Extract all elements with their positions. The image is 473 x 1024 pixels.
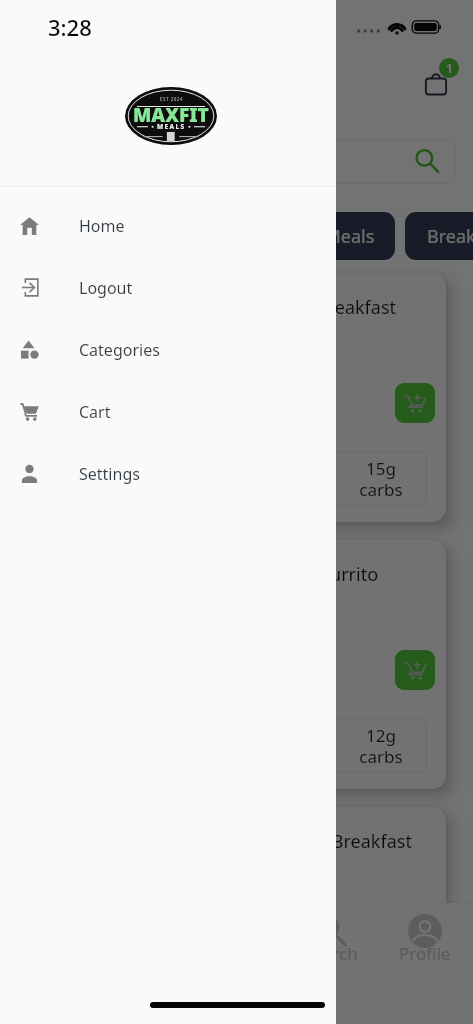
button[interactable]: Protein Breakfast (18, 273, 446, 522)
staticText: 420 kcal (59, 457, 91, 501)
staticText: Protein Breakfast (250, 295, 396, 320)
staticText: 15g carbs (359, 457, 403, 501)
button[interactable]: Logout (0, 258, 336, 320)
staticText: Chicken Burrito (247, 562, 379, 587)
staticText: 12g fat (264, 991, 294, 1024)
staticText: MAXFIT (133, 102, 209, 128)
staticText: Search (304, 942, 358, 965)
staticText: Breakfast (427, 224, 473, 249)
staticText: Settings (79, 463, 140, 485)
button[interactable]: Chicken Burrito (18, 540, 446, 789)
staticText: Home (79, 215, 125, 237)
button[interactable]: Categories (0, 320, 336, 382)
button[interactable]: Power Breakfast (18, 807, 446, 1024)
staticText: Cart (79, 401, 111, 423)
button[interactable]: High Protein (18, 212, 257, 260)
button[interactable]: Search (289, 903, 373, 975)
staticText: EST 2024 (160, 96, 183, 102)
button[interactable]: Cart (0, 382, 336, 444)
button[interactable]: Home (0, 196, 336, 258)
staticText: Logout (79, 277, 133, 299)
button[interactable]: Breakfast (405, 212, 473, 260)
staticText: MEALS (157, 122, 186, 131)
button[interactable]: Cart (425, 72, 447, 95)
button[interactable]: Profile (383, 903, 467, 975)
button[interactable] (18, 139, 456, 184)
button[interactable]: Add to cart (395, 917, 435, 957)
staticText: Profile (399, 942, 451, 965)
staticText: 3:28 (48, 12, 92, 42)
button[interactable]: All Meals (266, 212, 395, 260)
staticText: Categories (79, 339, 160, 361)
staticText: 28g protein (148, 991, 207, 1024)
staticText: Power Breakfast (274, 829, 412, 854)
button[interactable]: Add to cart (395, 650, 435, 690)
staticText: 1 (446, 60, 453, 76)
button[interactable]: Settings (0, 444, 336, 506)
staticText: 12g carbs (359, 724, 403, 768)
button[interactable]: Add to cart (395, 383, 435, 423)
staticText: All Meals (299, 224, 375, 249)
